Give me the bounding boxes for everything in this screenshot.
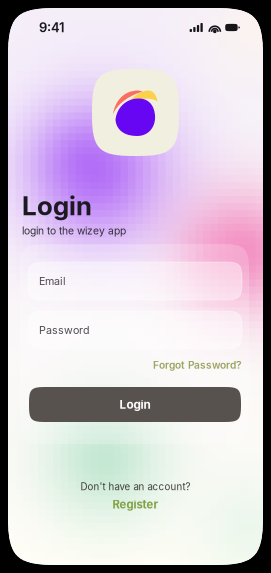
staticText: Password xyxy=(39,323,90,336)
button[interactable]: Password xyxy=(28,311,242,349)
button[interactable]: Email xyxy=(28,262,242,300)
button[interactable]: Forgot Password? xyxy=(153,359,242,371)
staticText: Forgot Password? xyxy=(153,359,242,371)
staticText: Login xyxy=(22,190,92,221)
staticText: Email xyxy=(39,274,66,287)
staticText: login to the wizey app xyxy=(22,224,126,237)
button[interactable]: Login xyxy=(29,387,241,422)
staticText: Don't have an account? xyxy=(80,481,190,493)
staticText: Register xyxy=(112,498,158,511)
staticText: Login xyxy=(119,397,150,411)
staticText: 9:41 xyxy=(39,20,64,35)
button[interactable]: Register xyxy=(112,498,158,511)
